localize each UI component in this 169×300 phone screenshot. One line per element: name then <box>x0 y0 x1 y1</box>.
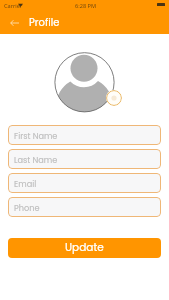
button[interactable]: Back <box>5 14 23 32</box>
staticText: Update <box>65 240 104 255</box>
button[interactable]: Profile photo <box>54 52 115 113</box>
staticText: Email <box>14 178 37 189</box>
staticText: 6:28 PM <box>75 2 97 10</box>
button[interactable]: First Name <box>8 125 161 145</box>
staticText: Carrier <box>4 2 23 10</box>
button[interactable]: Phone <box>8 197 161 217</box>
button[interactable]: Update <box>8 238 161 258</box>
button[interactable]: Change profile photo <box>106 90 122 106</box>
button[interactable]: Last Name <box>8 149 161 169</box>
staticText: Last Name <box>14 154 58 165</box>
staticText: First Name <box>14 130 58 141</box>
button[interactable]: Email <box>8 173 161 193</box>
staticText: Phone <box>14 202 40 213</box>
staticText: Profile <box>29 15 60 29</box>
